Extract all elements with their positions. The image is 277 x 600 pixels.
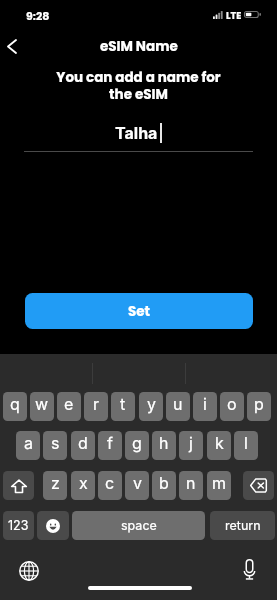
staticText: 9:28 <box>26 8 50 23</box>
button[interactable]: Set <box>25 293 253 329</box>
button[interactable]: Backspace <box>243 471 274 500</box>
button[interactable]: q <box>3 392 27 421</box>
staticText: z <box>51 473 60 492</box>
staticText: q <box>10 394 20 413</box>
staticText: m <box>212 473 227 492</box>
staticText: You can add a name for the eSIM <box>18 68 259 104</box>
button[interactable]: p <box>247 392 271 421</box>
staticText: b <box>159 473 169 492</box>
button[interactable]: 123 <box>3 511 34 540</box>
button[interactable]: Dictation <box>235 555 263 583</box>
button[interactable]: d <box>71 431 95 460</box>
button[interactable]: space <box>72 511 205 540</box>
button[interactable]: m <box>207 471 231 500</box>
button[interactable]: Emoji <box>37 511 69 540</box>
staticText: i <box>203 394 207 413</box>
button[interactable]: t <box>111 392 135 421</box>
staticText: v <box>133 473 142 492</box>
staticText: l <box>244 433 248 452</box>
staticText: Talha <box>115 123 158 142</box>
button[interactable]: e <box>57 392 81 421</box>
button[interactable]: Change keyboard language <box>14 556 43 585</box>
staticText: r <box>93 394 100 413</box>
staticText: h <box>159 433 169 452</box>
staticText: w <box>35 394 49 413</box>
button[interactable]: b <box>152 471 176 500</box>
staticText: k <box>215 433 224 452</box>
staticText: c <box>105 473 115 492</box>
staticText: space <box>121 518 157 533</box>
button[interactable]: v <box>125 471 149 500</box>
button[interactable]: y <box>139 392 163 421</box>
staticText: u <box>173 394 183 413</box>
button[interactable]: return <box>210 511 275 540</box>
button[interactable]: Back <box>0 33 24 59</box>
staticText: g <box>132 433 142 452</box>
button[interactable]: k <box>207 431 231 460</box>
button[interactable]: c <box>98 471 122 500</box>
button[interactable]: w <box>30 392 54 421</box>
staticText: x <box>79 473 88 492</box>
button[interactable]: n <box>179 471 203 500</box>
staticText: y <box>147 394 156 413</box>
staticText: o <box>227 394 237 413</box>
button[interactable]: h <box>152 431 176 460</box>
staticText: j <box>189 433 193 452</box>
staticText: Set <box>128 302 151 321</box>
staticText: n <box>186 473 196 492</box>
button[interactable]: a <box>16 431 40 460</box>
staticText: f <box>107 433 113 452</box>
button[interactable]: l <box>234 431 258 460</box>
staticText: 123 <box>8 518 29 533</box>
staticText: a <box>24 433 33 452</box>
button[interactable]: i <box>193 392 217 421</box>
button[interactable]: j <box>179 431 203 460</box>
staticText: d <box>78 433 88 452</box>
button[interactable]: g <box>125 431 149 460</box>
staticText: e <box>64 394 74 413</box>
staticText: p <box>254 394 264 413</box>
button[interactable]: u <box>166 392 190 421</box>
button[interactable]: Shift <box>3 471 34 500</box>
staticText: return <box>225 518 261 533</box>
button[interactable]: f <box>98 431 122 460</box>
staticText: LTE <box>226 9 242 22</box>
button[interactable]: o <box>220 392 244 421</box>
button[interactable]: x <box>71 471 95 500</box>
button[interactable]: s <box>43 431 67 460</box>
button[interactable]: z <box>43 471 67 500</box>
staticText: eSIM Name <box>100 37 178 56</box>
staticText: s <box>51 433 60 452</box>
button[interactable]: r <box>84 392 108 421</box>
staticText: t <box>120 394 126 413</box>
